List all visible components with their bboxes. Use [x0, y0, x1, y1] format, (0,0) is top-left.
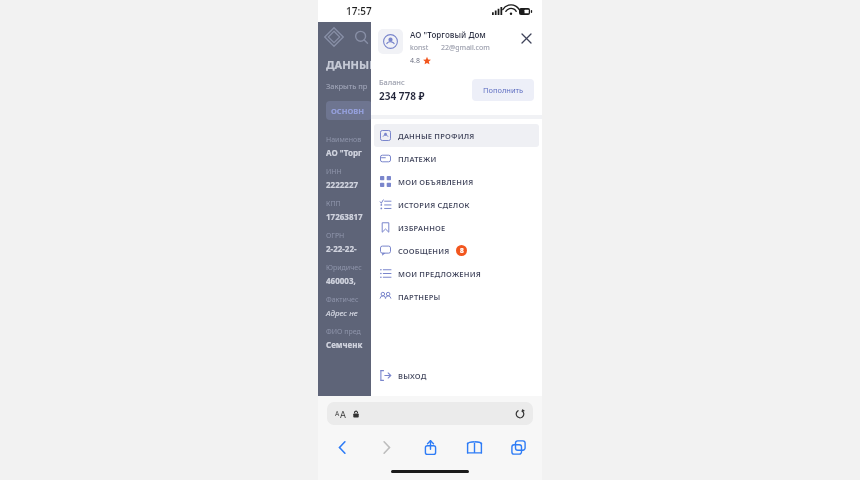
staticText: ФИО пред — [326, 327, 361, 337]
button[interactable]: A — [327, 402, 533, 425]
staticText: Баланс — [379, 77, 405, 87]
staticText: 17263817 — [326, 211, 363, 222]
button[interactable]: ВЫХОД — [374, 364, 539, 387]
button[interactable]: Bookmarks — [461, 434, 487, 460]
staticText: 4.8 — [410, 56, 420, 66]
staticText: A — [340, 408, 346, 420]
staticText: 2222227 — [326, 179, 359, 190]
button[interactable]: СООБЩЕНИЯ — [374, 239, 539, 262]
button[interactable]: Tabs — [505, 434, 531, 460]
staticText: АО "Торг — [326, 147, 362, 158]
button[interactable]: ПАРТНЕРЫ — [374, 285, 539, 308]
button[interactable]: ДАННЫЕ ПРОФИЛЯ — [374, 124, 539, 147]
staticText: Наименов — [326, 135, 362, 145]
button[interactable]: МОИ ОБЪЯВЛЕНИЯ — [374, 170, 539, 193]
button[interactable]: Close — [517, 29, 535, 47]
button[interactable]: Пополнить — [472, 79, 534, 101]
staticText: ПЛАТЕЖИ — [398, 154, 437, 164]
staticText: 8 — [460, 246, 464, 255]
staticText: Семченк — [326, 339, 363, 350]
other: Reload — [515, 409, 525, 419]
staticText: Адрес не — [326, 307, 358, 318]
staticText: 234 778 ₽ — [379, 89, 425, 103]
button[interactable]: Back — [329, 434, 355, 460]
staticText: КПП — [326, 199, 341, 209]
button[interactable]: ИСТОРИЯ СДЕЛОК — [374, 193, 539, 216]
staticText: 22@gmail.com — [441, 43, 490, 53]
staticText: Юридичес — [326, 263, 362, 273]
staticText: АО "Торговый Дом — [410, 29, 486, 40]
other: Secure — [352, 410, 360, 418]
staticText: ВЫХОД — [398, 371, 427, 381]
staticText: 460003, — [326, 275, 356, 286]
button[interactable]: Share — [417, 434, 443, 460]
staticText: ОГРН — [326, 231, 345, 241]
staticText: МОИ ОБЪЯВЛЕНИЯ — [398, 177, 474, 187]
other: Search — [354, 30, 369, 45]
staticText: Фактичес — [326, 295, 359, 305]
staticText: A — [335, 409, 340, 418]
button[interactable]: МОИ ПРЕДЛОЖЕНИЯ — [374, 262, 539, 285]
staticText: Закрыть пр — [326, 81, 368, 91]
staticText: 17:57 — [346, 4, 372, 18]
staticText: ПАРТНЕРЫ — [398, 292, 441, 302]
staticText: konst — [410, 43, 429, 53]
staticText: СООБЩЕНИЯ — [398, 246, 450, 256]
staticText: ИНН — [326, 167, 342, 177]
staticText: МОИ ПРЕДЛОЖЕНИЯ — [398, 269, 481, 279]
staticText: ИЗБРАННОЕ — [398, 223, 446, 233]
staticText: 2-22-22- — [326, 243, 357, 254]
button[interactable]: Forward — [373, 434, 399, 460]
staticText: ДАННЫЕ — [326, 57, 376, 72]
staticText: ДАННЫЕ ПРОФИЛЯ — [398, 131, 475, 141]
button[interactable]: ИЗБРАННОЕ — [374, 216, 539, 239]
staticText: ИСТОРИЯ СДЕЛОК — [398, 200, 470, 210]
staticText: ОСНОВН — [331, 106, 365, 116]
button[interactable]: ПЛАТЕЖИ — [374, 147, 539, 170]
staticText: Пополнить — [483, 85, 524, 95]
